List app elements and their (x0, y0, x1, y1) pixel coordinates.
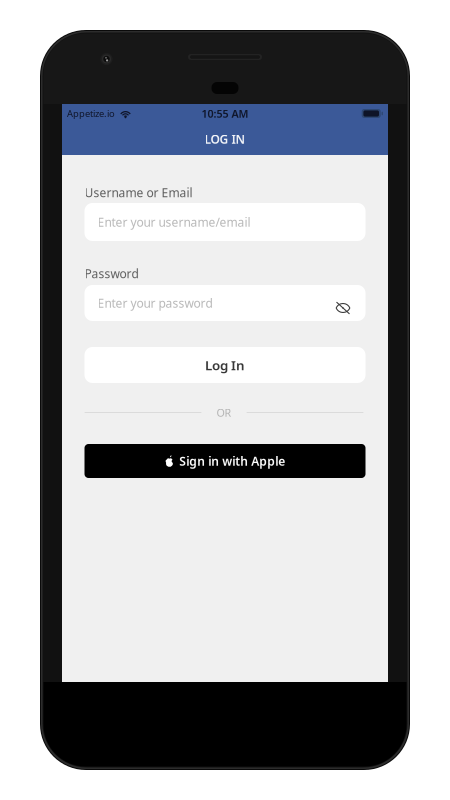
staticText: LOG IN (204, 131, 245, 147)
button[interactable]: Sign in with Apple (84, 444, 365, 478)
staticText: Username or Email (84, 184, 192, 200)
staticText: Sign in with Apple (179, 453, 285, 469)
staticText: Enter your username/email (97, 214, 250, 230)
staticText: Password (84, 265, 138, 281)
staticText: Log In (205, 356, 245, 374)
staticText: Enter your password (97, 295, 212, 311)
staticText: Appetize.io (67, 107, 115, 120)
button[interactable]: Log In (84, 347, 365, 383)
staticText: OR (216, 405, 231, 420)
staticText: 10:55 AM (201, 106, 248, 121)
button[interactable]: Show password (334, 290, 360, 316)
